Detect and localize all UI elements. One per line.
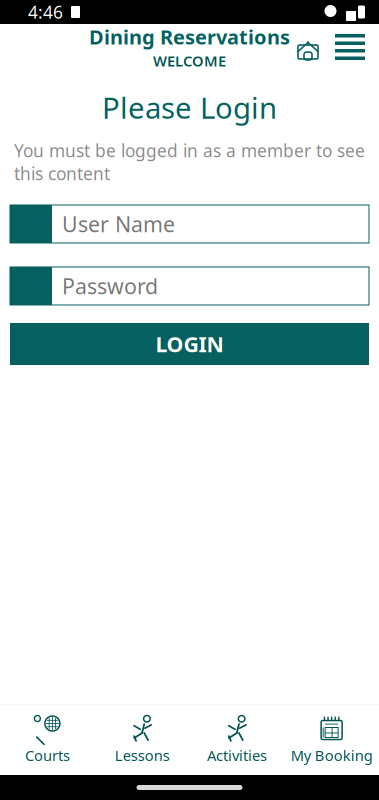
- staticText: Please Login: [102, 88, 277, 127]
- button[interactable]: Lessons: [95, 708, 190, 771]
- button[interactable]: Activities: [189, 708, 284, 771]
- staticText: Lessons: [115, 745, 170, 765]
- staticText: WELCOME: [153, 51, 226, 70]
- button[interactable]: Courts: [0, 708, 95, 771]
- staticText: LOGIN: [155, 330, 223, 358]
- staticText: You must be logged in as a member to see…: [14, 139, 365, 185]
- button[interactable]: My Booking: [284, 708, 379, 771]
- staticText: 4:46: [28, 0, 63, 23]
- staticText: Courts: [25, 745, 70, 765]
- staticText: Password: [62, 272, 158, 300]
- button[interactable]: Menu: [327, 34, 379, 60]
- staticText: User Name: [62, 210, 175, 238]
- button[interactable]: LOGIN: [0, 323, 379, 365]
- staticText: Activities: [207, 745, 267, 765]
- staticText: Dining Reservations: [89, 23, 290, 50]
- staticText: My Booking: [291, 745, 373, 765]
- button[interactable]: Home: [289, 34, 327, 60]
